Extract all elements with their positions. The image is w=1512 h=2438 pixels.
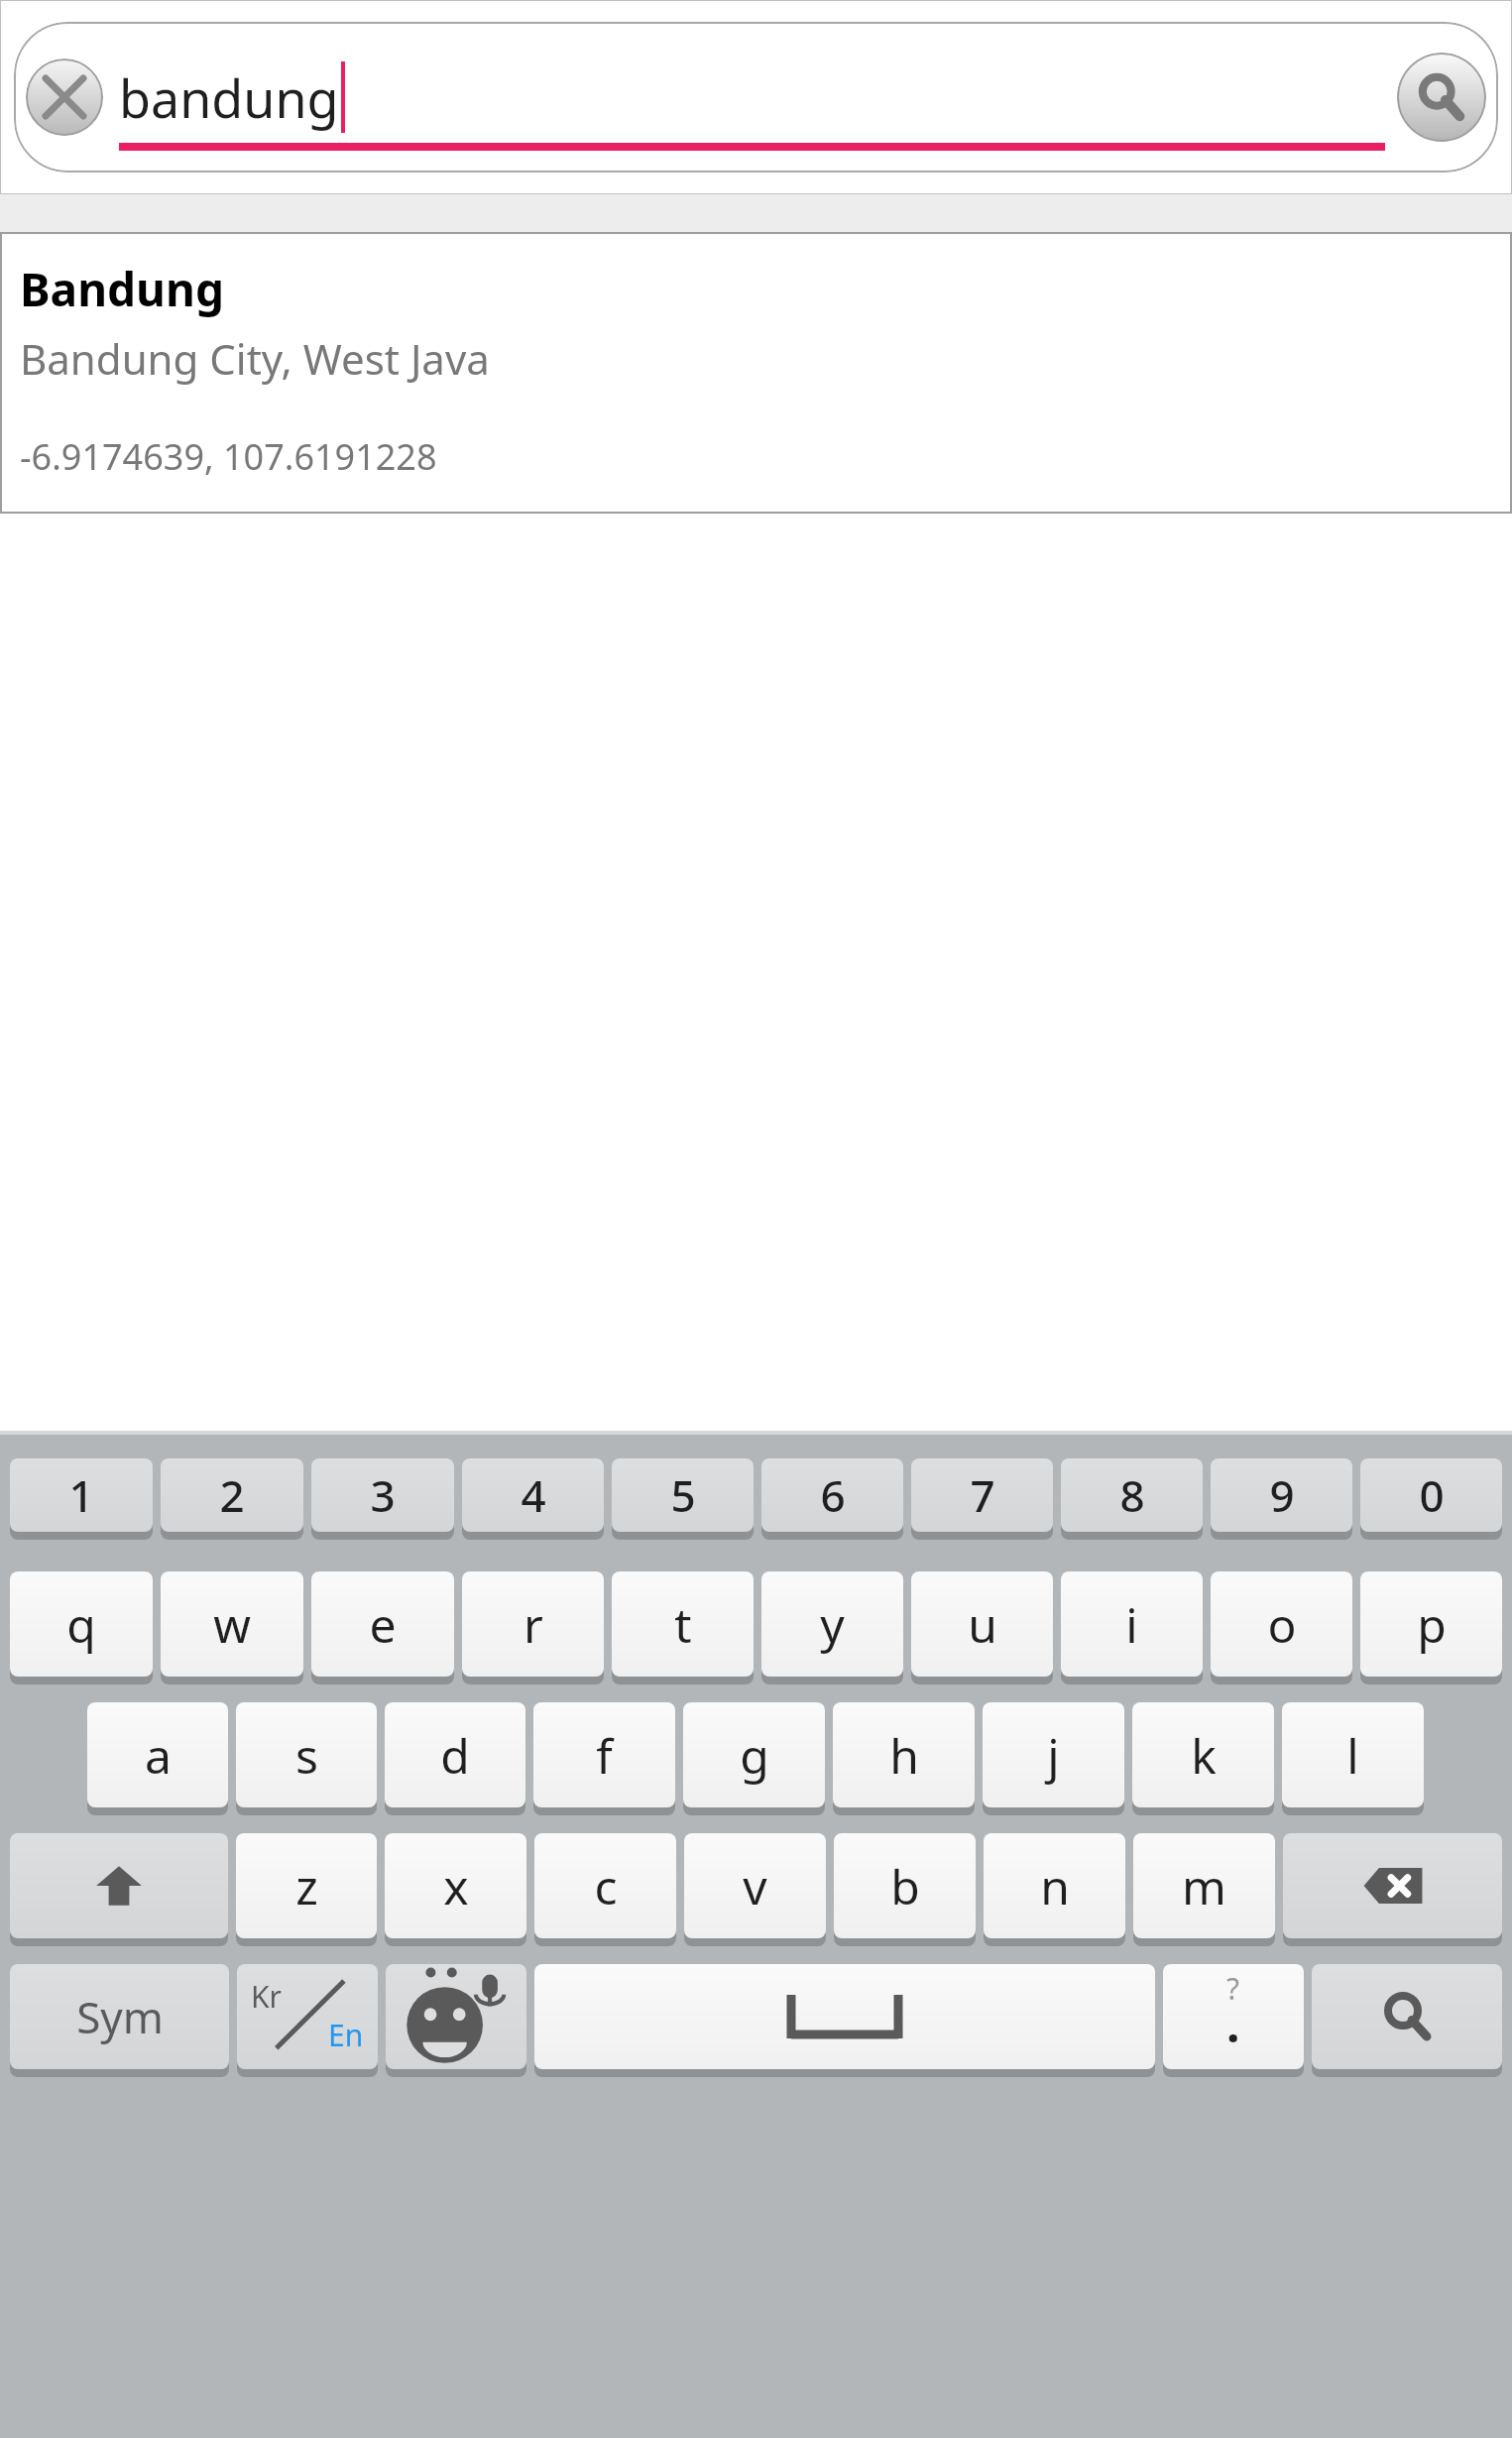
button[interactable]: 6 <box>761 1458 903 1540</box>
staticText: e <box>369 1592 397 1657</box>
staticText: u <box>968 1592 997 1657</box>
button[interactable]: o <box>1211 1571 1352 1684</box>
button[interactable]: Bandung <box>0 232 1512 514</box>
button[interactable]: 0 <box>1360 1458 1502 1540</box>
button[interactable]: d <box>385 1702 525 1815</box>
button[interactable]: 5 <box>612 1458 754 1540</box>
staticText: s <box>295 1723 318 1788</box>
staticText: v <box>743 1854 767 1918</box>
button[interactable]: w <box>161 1571 303 1684</box>
staticText: p <box>1417 1592 1447 1657</box>
staticText: c <box>594 1854 618 1918</box>
button[interactable]: Backspace <box>1283 1833 1502 1946</box>
button[interactable]: e <box>311 1571 454 1684</box>
button[interactable]: i <box>1061 1571 1203 1684</box>
staticText: q <box>66 1592 96 1657</box>
staticText: i <box>1125 1592 1138 1657</box>
staticText: Bandung City, West Java <box>20 330 490 387</box>
staticText: Bandung <box>20 258 224 320</box>
staticText: a <box>145 1723 172 1788</box>
button[interactable]: s <box>236 1702 377 1815</box>
staticText: 6 <box>820 1465 846 1525</box>
button[interactable]: Period <box>1163 1964 1304 2077</box>
button[interactable]: 8 <box>1061 1458 1203 1540</box>
button[interactable]: y <box>761 1571 903 1684</box>
button[interactable]: Switch language <box>237 1964 378 2077</box>
staticText: r <box>523 1592 543 1657</box>
button[interactable]: l <box>1282 1702 1424 1815</box>
button[interactable]: h <box>833 1702 975 1815</box>
staticText: o <box>1267 1592 1297 1657</box>
staticText: En <box>328 2015 364 2055</box>
button[interactable]: p <box>1360 1571 1502 1684</box>
staticText: h <box>889 1723 919 1788</box>
button[interactable]: Search <box>1397 53 1486 142</box>
button[interactable]: 4 <box>462 1458 604 1540</box>
staticText: 5 <box>670 1465 696 1525</box>
staticText: l <box>1346 1723 1359 1788</box>
button[interactable]: q <box>10 1571 153 1684</box>
staticText: 3 <box>370 1465 396 1525</box>
button[interactable]: j <box>983 1702 1124 1815</box>
button[interactable]: r <box>462 1571 604 1684</box>
button[interactable]: 2 <box>161 1458 303 1540</box>
staticText: w <box>213 1592 251 1657</box>
button[interactable]: Clear search <box>26 58 103 136</box>
staticText: k <box>1191 1723 1217 1788</box>
button[interactable]: Space <box>534 1964 1155 2077</box>
staticText: 2 <box>219 1465 245 1525</box>
button[interactable]: x <box>385 1833 526 1946</box>
staticText: x <box>443 1854 469 1918</box>
button[interactable]: v <box>684 1833 826 1946</box>
button[interactable]: Emoji and voice input <box>386 1964 526 2077</box>
staticText: Sym <box>76 1987 164 2046</box>
button[interactable]: 7 <box>911 1458 1053 1540</box>
staticText: -6.9174639, 107.6191228 <box>20 432 437 481</box>
staticText: 1 <box>68 1465 94 1525</box>
button[interactable]: f <box>533 1702 675 1815</box>
staticText: t <box>674 1592 692 1657</box>
staticText: n <box>1040 1854 1070 1918</box>
staticText: . <box>1226 1992 1240 2056</box>
staticText: m <box>1182 1854 1226 1918</box>
staticText: z <box>295 1854 318 1918</box>
button[interactable]: c <box>534 1833 676 1946</box>
staticText: 4 <box>521 1465 546 1525</box>
staticText: y <box>820 1592 845 1657</box>
button[interactable]: 9 <box>1211 1458 1352 1540</box>
button[interactable]: 1 <box>10 1458 153 1540</box>
button[interactable]: t <box>612 1571 754 1684</box>
staticText: bandung <box>119 62 339 133</box>
button[interactable]: b <box>834 1833 976 1946</box>
staticText: j <box>1047 1723 1060 1788</box>
staticText: f <box>596 1723 613 1788</box>
button[interactable]: k <box>1132 1702 1274 1815</box>
staticText: d <box>440 1723 470 1788</box>
button[interactable]: m <box>1133 1833 1275 1946</box>
button[interactable]: n <box>984 1833 1125 1946</box>
staticText: 0 <box>1419 1465 1445 1525</box>
button[interactable]: 3 <box>311 1458 454 1540</box>
button[interactable]: Sym <box>10 1964 229 2077</box>
staticText: g <box>740 1723 769 1788</box>
button[interactable]: Shift <box>10 1833 228 1946</box>
button[interactable]: g <box>683 1702 825 1815</box>
button[interactable]: z <box>236 1833 377 1946</box>
button[interactable]: u <box>911 1571 1053 1684</box>
staticText: Kr <box>251 1976 282 2017</box>
staticText: 9 <box>1269 1465 1295 1525</box>
staticText: 7 <box>970 1465 995 1525</box>
staticText: 8 <box>1119 1465 1145 1525</box>
button[interactable]: a <box>87 1702 228 1815</box>
staticText: b <box>890 1854 920 1918</box>
staticText: ? <box>1226 1968 1240 2009</box>
button[interactable]: Search <box>1312 1964 1502 2077</box>
